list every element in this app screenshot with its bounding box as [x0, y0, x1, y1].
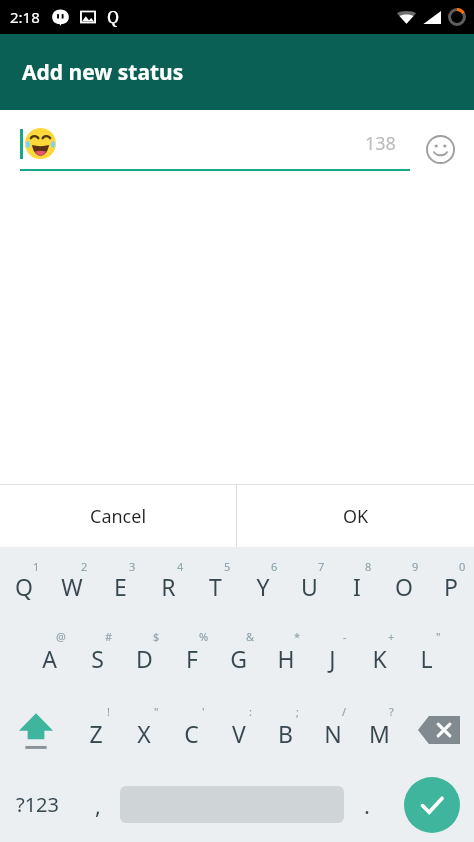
button[interactable]: , — [75, 767, 120, 842]
staticText: 1 — [33, 559, 40, 574]
staticText: C — [184, 718, 199, 749]
button[interactable]: S — [73, 617, 121, 692]
staticText: 4 — [177, 559, 184, 574]
staticText: 138 — [365, 131, 396, 156]
staticText: 0 — [459, 559, 466, 574]
staticText: J — [329, 643, 336, 674]
staticText: U — [301, 571, 318, 602]
staticText: T — [209, 571, 222, 602]
staticText: * — [294, 629, 301, 644]
staticText: - — [343, 629, 347, 644]
button[interactable]: P — [427, 547, 474, 617]
button[interactable]: Y — [239, 547, 286, 617]
staticText: S — [91, 643, 104, 674]
button[interactable]: OK — [237, 485, 474, 547]
button[interactable]: Cancel — [0, 485, 236, 547]
staticText: Q — [15, 571, 33, 602]
button[interactable]: W — [48, 547, 96, 617]
staticText: ?123 — [16, 791, 59, 818]
button[interactable]: T — [192, 547, 239, 617]
staticText: X — [137, 718, 151, 749]
button[interactable]: A — [25, 617, 73, 692]
button[interactable]: H — [262, 617, 309, 692]
staticText: I — [353, 571, 361, 602]
button[interactable]: M — [356, 692, 403, 767]
button[interactable]: Shift — [0, 692, 72, 767]
staticText: @ — [56, 629, 66, 644]
staticText: : — [249, 704, 252, 719]
staticText: " — [154, 704, 159, 719]
staticText: Cancel — [90, 504, 147, 529]
staticText: Z — [89, 718, 103, 749]
staticText: ; — [296, 704, 299, 719]
button[interactable]: Backspace — [403, 692, 474, 767]
button[interactable]: N — [309, 692, 356, 767]
staticText: / — [342, 704, 347, 719]
button[interactable]: D — [121, 617, 168, 692]
staticText: N — [324, 718, 342, 749]
staticText: K — [372, 643, 387, 674]
button[interactable]: X — [120, 692, 168, 767]
button[interactable]: I — [333, 547, 380, 617]
staticText: F — [186, 643, 198, 674]
button[interactable]: Enter — [404, 777, 460, 833]
staticText: ! — [107, 704, 110, 719]
button[interactable]: U — [286, 547, 333, 617]
button[interactable]: C — [168, 692, 215, 767]
button[interactable]: J — [309, 617, 356, 692]
staticText: # — [105, 629, 113, 644]
staticText: Q — [107, 6, 120, 28]
staticText: 5 — [224, 559, 231, 574]
staticText: H — [277, 643, 295, 674]
button[interactable]: R — [144, 547, 192, 617]
staticText: + — [388, 629, 395, 644]
staticText: ' — [202, 704, 205, 719]
staticText: E — [114, 571, 127, 602]
button[interactable]: O — [380, 547, 427, 617]
staticText: W — [61, 571, 83, 602]
staticText: R — [161, 571, 176, 602]
button[interactable]: V — [215, 692, 262, 767]
staticText: OK — [343, 504, 369, 529]
button[interactable]: . — [344, 767, 389, 842]
button[interactable]: B — [262, 692, 309, 767]
staticText: ? — [389, 704, 394, 719]
staticText: . — [364, 790, 370, 820]
staticText: V — [232, 718, 246, 749]
staticText: 6 — [271, 559, 278, 574]
button[interactable]: Emoji — [422, 131, 458, 167]
staticText: , — [95, 790, 101, 820]
staticText: L — [420, 643, 433, 674]
staticText: O — [395, 571, 413, 602]
staticText: 2:18 — [10, 7, 40, 27]
staticText: " — [436, 629, 441, 644]
staticText: Y — [256, 571, 270, 602]
staticText: 8 — [365, 559, 372, 574]
staticText: % — [199, 629, 209, 644]
staticText: M — [369, 718, 390, 749]
staticText: 2 — [81, 559, 88, 574]
staticText: 7 — [318, 559, 325, 574]
staticText: G — [230, 643, 247, 674]
staticText: $ — [153, 629, 160, 644]
staticText: A — [42, 643, 57, 674]
button[interactable]: Q — [0, 547, 48, 617]
staticText: B — [278, 718, 293, 749]
staticText: P — [444, 571, 458, 602]
staticText: & — [246, 629, 255, 644]
button[interactable]: Z — [72, 692, 120, 767]
button[interactable]: F — [168, 617, 215, 692]
button[interactable]: K — [356, 617, 403, 692]
button[interactable]: L — [403, 617, 450, 692]
button[interactable]: E — [96, 547, 144, 617]
button[interactable]: G — [215, 617, 262, 692]
staticText: D — [136, 643, 153, 674]
staticText: 9 — [412, 559, 419, 574]
staticText: 3 — [129, 559, 136, 574]
button[interactable]: ?123 — [0, 767, 75, 842]
staticText: Add new status — [22, 58, 184, 87]
